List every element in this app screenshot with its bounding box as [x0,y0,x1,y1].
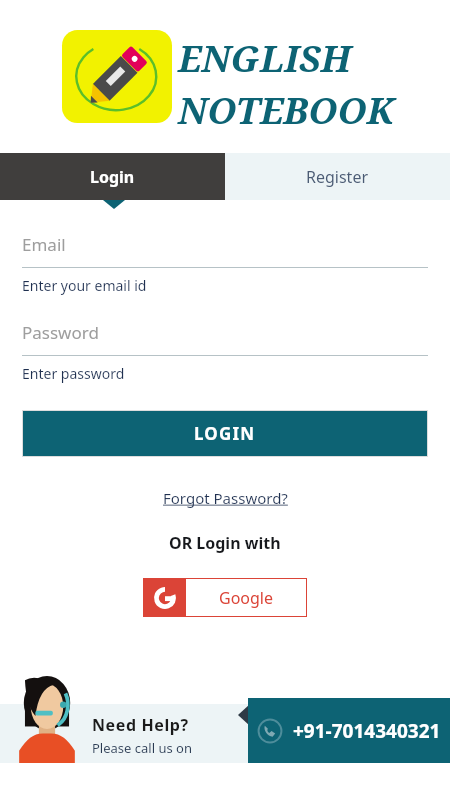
button[interactable]: Google [143,578,307,617]
staticText: +91-7014340321 [293,718,441,744]
staticText: Forgot Password? [163,488,288,508]
staticText: OR Login with [169,532,281,554]
staticText: Please call us on [92,739,192,757]
staticText: Register [306,166,369,188]
button[interactable]: Email [22,233,428,295]
staticText: Google [219,587,274,609]
staticText: Need Help? [92,714,189,736]
staticText: Email [22,233,66,256]
button[interactable]: Password [22,321,428,383]
staticText: LOGIN [194,422,256,445]
staticText: Enter your email id [22,276,147,295]
button[interactable]: LOGIN [23,411,427,456]
staticText: NOTEBOOK [178,84,395,134]
button[interactable]: Call +91-7014340321 [248,698,450,763]
staticText: Login [90,166,135,188]
button[interactable]: Forgot Password? [157,486,294,510]
staticText: Enter password [22,364,125,383]
staticText: Password [22,321,99,344]
staticText: ENGLISH [178,32,352,82]
button[interactable]: Login [0,153,225,200]
button[interactable]: Register [225,153,450,200]
